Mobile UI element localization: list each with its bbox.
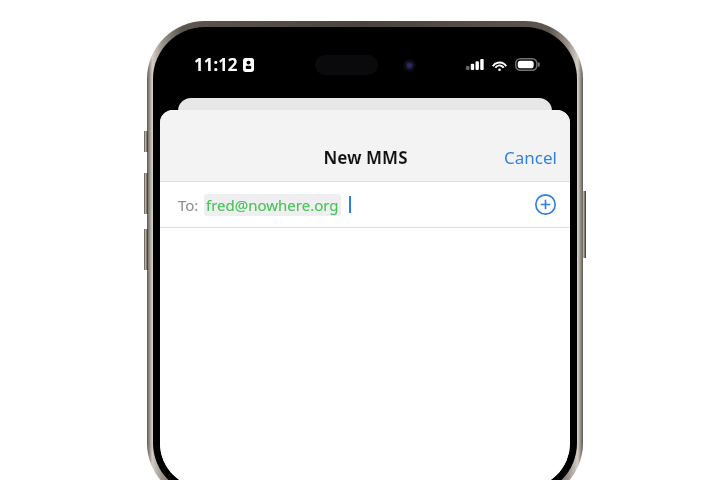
staticText: Cancel — [504, 146, 557, 169]
staticText: 11:12 — [194, 53, 238, 76]
staticText: New MMS — [323, 146, 408, 169]
button[interactable]: Cancel — [491, 139, 570, 176]
staticText: To: — [178, 195, 199, 215]
staticText: fred@nowhere.org — [206, 195, 339, 215]
button[interactable]: To: — [160, 182, 570, 227]
button[interactable]: Add recipient — [521, 187, 570, 222]
